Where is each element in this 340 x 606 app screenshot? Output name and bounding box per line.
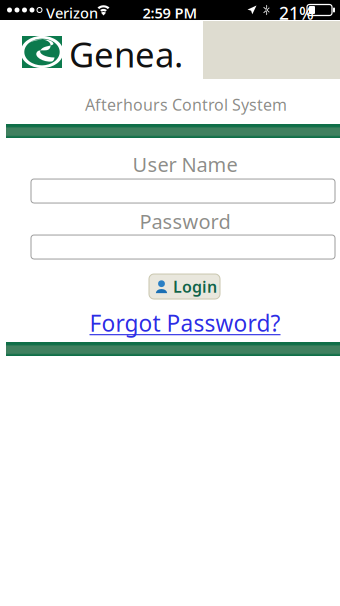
button[interactable]: Forgot Password?: [33, 308, 337, 338]
staticText: Forgot Password?: [89, 308, 280, 338]
staticText: 2:59 PM: [142, 3, 197, 22]
staticText: Login: [173, 276, 217, 297]
button[interactable]: Login: [149, 274, 220, 299]
staticText: Genea.: [69, 31, 183, 77]
staticText: Password: [139, 208, 230, 235]
staticText: User Name: [132, 151, 237, 178]
staticText: 21%: [279, 1, 314, 24]
staticText: Verizon: [46, 3, 98, 22]
staticText: Afterhours Control System: [85, 94, 287, 115]
